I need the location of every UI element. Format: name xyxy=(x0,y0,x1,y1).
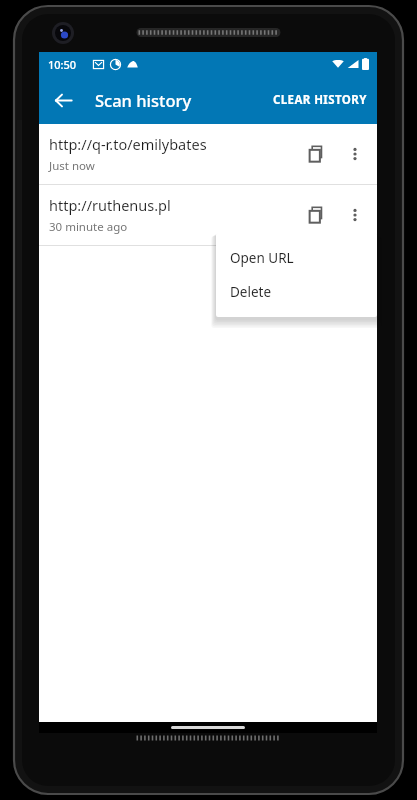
staticText: Just now xyxy=(49,158,95,174)
staticText: 10:50 xyxy=(48,57,77,72)
button[interactable]: Back xyxy=(43,80,83,120)
staticText: Scan history xyxy=(95,89,192,111)
staticText: http://ruthenus.pl xyxy=(49,195,171,215)
staticText: 30 minute ago xyxy=(49,219,128,235)
button[interactable]: More options xyxy=(337,136,373,172)
button[interactable]: http://q-r.to/emilybates xyxy=(39,124,377,184)
staticText: http://q-r.to/emilybates xyxy=(49,134,207,154)
button[interactable]: More options xyxy=(337,197,373,233)
staticText: Delete xyxy=(230,283,272,301)
button[interactable]: Delete xyxy=(216,275,377,309)
button[interactable]: Copy URL xyxy=(297,195,337,235)
button[interactable]: Copy URL xyxy=(297,134,337,174)
staticText: Open URL xyxy=(230,249,294,267)
button[interactable]: http://ruthenus.pl xyxy=(39,185,377,245)
button[interactable]: CLEAR HISTORY xyxy=(263,76,377,124)
staticText: CLEAR HISTORY xyxy=(273,92,367,108)
button[interactable]: Open URL xyxy=(216,241,377,275)
